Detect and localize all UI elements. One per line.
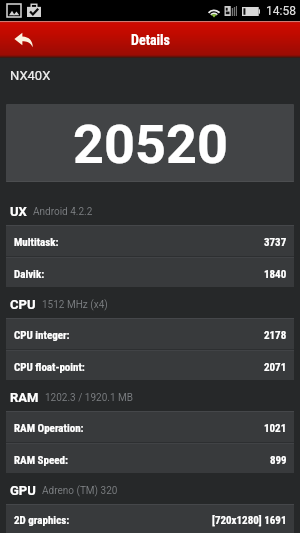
staticText: Android 4.2.2	[33, 206, 93, 218]
staticText: 14:58	[266, 4, 296, 18]
staticText: RAM Speed:	[14, 454, 68, 467]
staticText: 1512 MHz (x4)	[42, 299, 108, 311]
staticText: RAM Operation:	[14, 422, 84, 435]
button[interactable]: CPU float-point:	[6, 349, 294, 380]
staticText: 2178	[264, 329, 287, 342]
staticText: 2071	[264, 361, 287, 374]
staticText: [720x1280] 1691	[212, 514, 287, 527]
staticText: 3737	[264, 236, 287, 249]
button[interactable]: RAM Operation:	[6, 411, 294, 442]
staticText: Details	[131, 32, 170, 48]
button[interactable]: Multitask:	[6, 225, 294, 256]
staticText: Adreno (TM) 320	[42, 485, 118, 497]
staticText: Multitask:	[14, 236, 59, 249]
staticText: 20520	[73, 113, 228, 176]
staticText: RAM	[10, 390, 39, 405]
staticText: GPU	[10, 483, 36, 498]
button[interactable]: 2D graphics:	[6, 504, 294, 533]
staticText: 1202.3 / 1920.1 MB	[45, 392, 134, 404]
staticText: 899	[270, 454, 287, 467]
staticText: 1840	[264, 268, 287, 281]
staticText: Dalvik:	[14, 268, 45, 281]
staticText: CPU integer:	[14, 329, 70, 342]
button[interactable]: Dalvik:	[6, 256, 294, 287]
staticText: CPU	[10, 297, 36, 312]
staticText: CPU float-point:	[14, 361, 85, 374]
staticText: 2D graphics:	[14, 514, 70, 527]
staticText: NX40X	[10, 68, 51, 83]
button[interactable]: Back	[0, 21, 46, 58]
button[interactable]: RAM Speed:	[6, 442, 294, 473]
staticText: 1021	[264, 422, 287, 435]
staticText: UX	[10, 204, 27, 219]
button[interactable]: CPU integer:	[6, 318, 294, 349]
